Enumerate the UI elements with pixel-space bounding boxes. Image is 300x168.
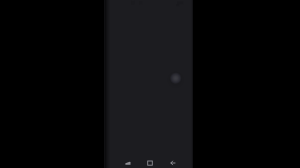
button[interactable]: Add	[169, 71, 183, 85]
button[interactable]: Home	[143, 157, 157, 168]
button[interactable]: Back	[165, 157, 179, 168]
button[interactable]: Recent apps	[121, 157, 135, 168]
